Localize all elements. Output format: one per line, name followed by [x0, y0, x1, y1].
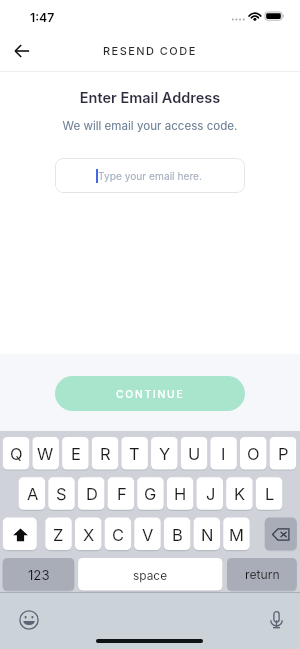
button[interactable]: A — [19, 477, 46, 510]
button[interactable]: M — [223, 518, 250, 551]
staticText: M — [229, 525, 244, 545]
button[interactable]: J — [197, 477, 224, 510]
staticText: H — [174, 484, 187, 504]
staticText: I — [221, 444, 226, 464]
staticText: N — [201, 525, 214, 545]
staticText: R — [100, 444, 111, 464]
staticText: Y — [159, 444, 171, 464]
button[interactable]: P — [270, 437, 297, 470]
button[interactable]: Dictation — [264, 608, 288, 632]
button[interactable]: W — [32, 437, 59, 470]
button[interactable]: S — [48, 477, 75, 510]
button[interactable]: Q — [3, 437, 30, 470]
staticText: Q — [10, 444, 23, 464]
staticText: We will email your access code. — [0, 119, 300, 133]
button[interactable]: V — [134, 518, 161, 551]
button[interactable]: O — [240, 437, 267, 470]
staticText: S — [56, 484, 67, 504]
button[interactable]: F — [108, 477, 135, 510]
button[interactable]: N — [194, 518, 221, 551]
button[interactable]: Shift — [3, 518, 37, 551]
button[interactable]: Backspace — [265, 518, 297, 551]
button[interactable]: E — [62, 437, 89, 470]
staticText: Type your email here. — [98, 170, 202, 182]
button[interactable]: 123 — [3, 558, 75, 591]
staticText: P — [278, 444, 289, 464]
button[interactable]: G — [137, 477, 164, 510]
staticText: Enter Email Address — [0, 89, 300, 107]
staticText: E — [71, 444, 81, 464]
staticText: W — [37, 444, 54, 464]
button[interactable]: Z — [45, 518, 72, 551]
staticText: return — [245, 567, 280, 582]
button[interactable]: L — [256, 477, 283, 510]
button[interactable]: space — [78, 558, 222, 591]
staticText: RESEND CODE — [103, 44, 197, 57]
button[interactable]: CONTINUE — [55, 376, 245, 411]
button[interactable]: I — [210, 437, 237, 470]
button[interactable]: Y — [151, 437, 178, 470]
staticText: V — [142, 525, 154, 545]
staticText: F — [117, 484, 127, 504]
button[interactable]: D — [78, 477, 105, 510]
button[interactable]: C — [105, 518, 132, 551]
staticText: 123 — [28, 567, 50, 583]
button[interactable]: B — [164, 518, 191, 551]
staticText: K — [234, 484, 246, 504]
staticText: L — [265, 484, 275, 504]
button[interactable]: X — [75, 518, 102, 551]
staticText: B — [172, 525, 183, 545]
staticText: U — [188, 444, 201, 464]
staticText: X — [83, 525, 95, 545]
staticText: G — [144, 484, 157, 504]
staticText: CONTINUE — [116, 388, 185, 400]
button[interactable]: H — [167, 477, 194, 510]
button[interactable]: U — [181, 437, 208, 470]
staticText: Z — [53, 525, 64, 545]
button[interactable]: Type your email here. — [55, 158, 245, 193]
button[interactable]: K — [226, 477, 253, 510]
staticText: 1:47 — [30, 10, 55, 25]
staticText: O — [247, 444, 260, 464]
staticText: D — [86, 484, 98, 504]
staticText: C — [112, 525, 125, 545]
staticText: space — [133, 568, 168, 582]
button[interactable]: Emoji — [16, 607, 41, 632]
staticText: J — [206, 484, 216, 504]
button[interactable]: Back — [4, 33, 40, 69]
button[interactable]: T — [121, 437, 148, 470]
button[interactable]: return — [227, 558, 297, 591]
staticText: A — [27, 484, 39, 504]
staticText: T — [129, 444, 140, 464]
button[interactable]: R — [92, 437, 119, 470]
